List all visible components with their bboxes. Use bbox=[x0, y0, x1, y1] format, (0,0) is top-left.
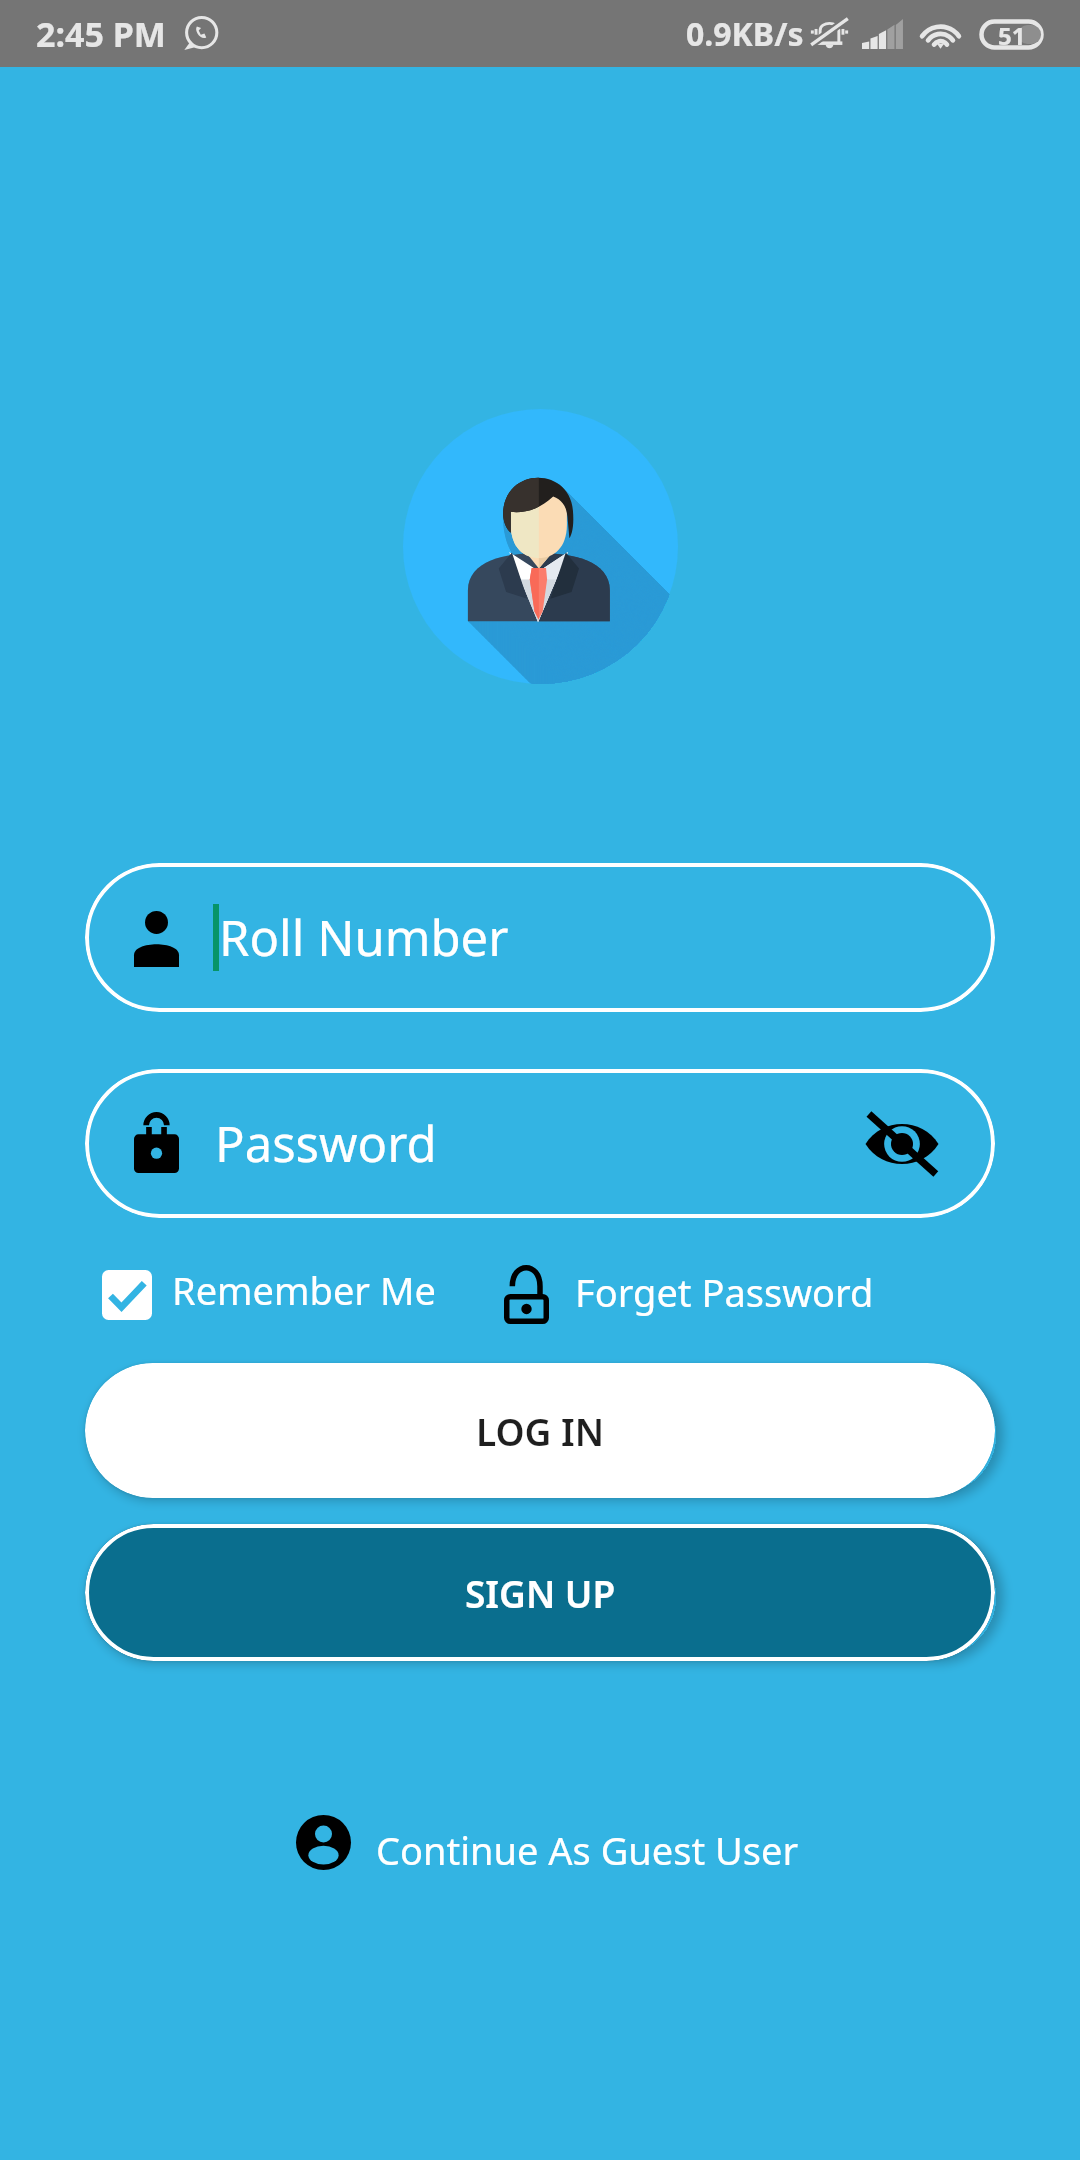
button[interactable]: SIGN UP bbox=[85, 1524, 995, 1661]
staticText: SIGN UP bbox=[465, 1568, 616, 1618]
staticText: Continue As Guest User bbox=[376, 1824, 799, 1876]
button[interactable]: LOG IN bbox=[85, 1363, 995, 1498]
button[interactable]: Guest user bbox=[296, 1815, 799, 1870]
staticText: 51 bbox=[998, 19, 1026, 50]
staticText: LOG IN bbox=[476, 1406, 605, 1456]
button[interactable]: Remember Me bbox=[102, 1269, 436, 1321]
staticText: Forget Password bbox=[575, 1266, 874, 1318]
other: Guest user bbox=[296, 1815, 351, 1870]
staticText: Password bbox=[215, 1110, 437, 1177]
button[interactable]: Password bbox=[85, 1069, 995, 1218]
button[interactable]: Roll Number bbox=[85, 863, 995, 1012]
staticText: 0.9KB/s bbox=[686, 12, 804, 56]
staticText: 2:45 PM bbox=[36, 11, 166, 57]
staticText: Roll Number bbox=[219, 904, 509, 971]
staticText: Remember Me bbox=[172, 1264, 436, 1316]
button[interactable]: Forget Password bbox=[504, 1265, 874, 1324]
